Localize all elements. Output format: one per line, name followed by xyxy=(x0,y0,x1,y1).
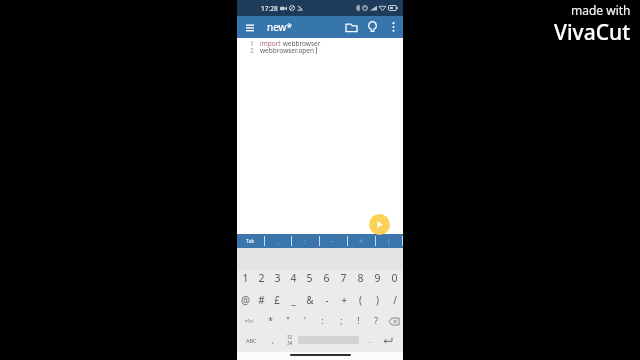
staticText: 2 xyxy=(258,271,265,285)
staticText: 17:28 xyxy=(261,4,278,13)
button[interactable]: : xyxy=(291,234,319,248)
button[interactable]: 12 xyxy=(281,333,298,347)
button[interactable]: Tab xyxy=(237,234,264,248)
button[interactable]: ) xyxy=(369,293,386,307)
staticText: webbrowser xyxy=(281,39,321,48)
button[interactable]: Space xyxy=(298,333,359,347)
staticText: 12 xyxy=(287,334,293,340)
staticText: 3 xyxy=(274,271,281,285)
button[interactable]: 0 xyxy=(386,271,403,285)
button[interactable]: 3 xyxy=(269,271,285,285)
button[interactable]: ? xyxy=(367,314,384,328)
staticText: # xyxy=(258,293,265,307)
button[interactable]: Enter xyxy=(378,333,398,347)
staticText: 1 xyxy=(250,39,254,48)
staticText: 5 xyxy=(306,271,313,285)
button[interactable]: ( xyxy=(352,293,369,307)
staticText: " xyxy=(286,315,290,327)
button[interactable]: @ xyxy=(237,293,253,307)
staticText: . xyxy=(369,336,371,346)
button[interactable]: ( xyxy=(375,234,403,248)
button[interactable]: Menu xyxy=(240,16,260,38)
button[interactable]: & xyxy=(301,293,318,307)
staticText: @ xyxy=(241,293,250,307)
staticText: ? xyxy=(374,315,378,327)
staticText: ) xyxy=(376,293,379,307)
button[interactable]: Run xyxy=(369,214,390,235)
staticText: / xyxy=(393,293,397,307)
button[interactable]: 2 xyxy=(253,271,269,285)
button[interactable]: Backspace xyxy=(384,314,403,328)
staticText: * xyxy=(359,237,363,246)
button[interactable]: ' xyxy=(296,314,313,328)
staticText: Tab xyxy=(246,238,255,245)
staticText: _ xyxy=(276,237,279,246)
button[interactable]: . xyxy=(361,333,378,347)
staticText: ! xyxy=(357,315,360,327)
button[interactable]: 7 xyxy=(335,271,352,285)
button[interactable]: ABC xyxy=(238,333,264,347)
staticText: & xyxy=(306,293,314,307)
staticText: ( xyxy=(359,293,362,307)
staticText: 6 xyxy=(323,271,330,285)
button[interactable]: : xyxy=(313,314,332,328)
staticText: £ xyxy=(274,293,280,307)
staticText: new* xyxy=(267,20,292,34)
staticText: =\< xyxy=(244,317,254,325)
button[interactable]: # xyxy=(253,293,269,307)
button[interactable]: 5 xyxy=(301,271,318,285)
staticText: ' xyxy=(304,315,306,327)
staticText: ABC xyxy=(246,337,257,344)
button[interactable]: 1 xyxy=(237,271,253,285)
staticText: : xyxy=(321,315,324,327)
staticText: 2 xyxy=(250,46,254,55)
staticText: 34 xyxy=(287,340,293,346)
button[interactable]: _ xyxy=(285,293,301,307)
staticText: import xyxy=(260,39,281,48)
button[interactable]: ; xyxy=(332,314,350,328)
button[interactable]: " xyxy=(279,314,296,328)
button[interactable]: 9 xyxy=(369,271,386,285)
button[interactable]: More options xyxy=(383,16,403,38)
staticText: VivaCut xyxy=(554,18,631,47)
button[interactable]: Hint xyxy=(362,16,383,38)
staticText: 1 xyxy=(242,271,249,285)
staticText: ( xyxy=(388,237,390,246)
staticText: 0 xyxy=(391,271,398,285)
staticText: _ xyxy=(291,293,296,307)
staticText: * xyxy=(268,315,273,327)
staticText: - xyxy=(325,293,329,307)
button[interactable]: , xyxy=(264,333,281,347)
button[interactable]: 6 xyxy=(318,271,335,285)
button[interactable]: + xyxy=(335,293,352,307)
staticText: ~ xyxy=(331,237,335,246)
button[interactable]: 4 xyxy=(285,271,301,285)
staticText: webbrowser.open xyxy=(260,46,315,55)
staticText: + xyxy=(341,293,347,307)
staticText: 8 xyxy=(357,271,364,285)
staticText: : xyxy=(304,237,306,246)
staticText: 4 xyxy=(290,271,297,285)
button[interactable]: ! xyxy=(350,314,367,328)
button[interactable]: £ xyxy=(269,293,285,307)
button[interactable]: _ xyxy=(264,234,291,248)
button[interactable]: Open file xyxy=(341,16,362,38)
button[interactable]: * xyxy=(347,234,375,248)
staticText: 7 xyxy=(340,271,347,285)
button[interactable]: ~ xyxy=(319,234,347,248)
staticText: made with xyxy=(571,2,631,18)
staticText: , xyxy=(272,336,274,346)
button[interactable]: - xyxy=(318,293,335,307)
button[interactable]: / xyxy=(386,293,403,307)
staticText: ; xyxy=(340,315,343,327)
button[interactable]: * xyxy=(261,314,279,328)
button[interactable]: 8 xyxy=(352,271,369,285)
button[interactable]: =\< xyxy=(237,314,261,328)
staticText: 9 xyxy=(374,271,381,285)
